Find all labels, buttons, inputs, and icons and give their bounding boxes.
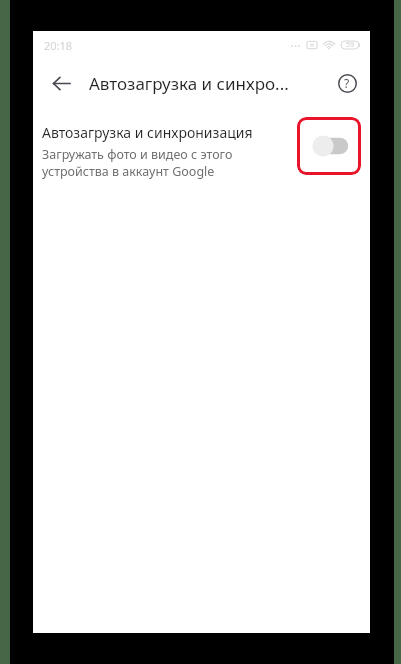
staticText: 59 (346, 40, 355, 50)
button[interactable]: Help (330, 66, 364, 100)
staticText: Автозагрузка и синхронизация (42, 123, 253, 142)
staticText: 20:18 (44, 38, 73, 53)
button[interactable]: Auto backup and sync toggle (297, 117, 361, 175)
staticText: Автозагрузка и синхро... (89, 72, 289, 95)
button[interactable]: Back (44, 66, 78, 100)
staticText: ? (344, 75, 350, 91)
staticText: Загружать фото и видео с этого устройств… (42, 146, 292, 180)
